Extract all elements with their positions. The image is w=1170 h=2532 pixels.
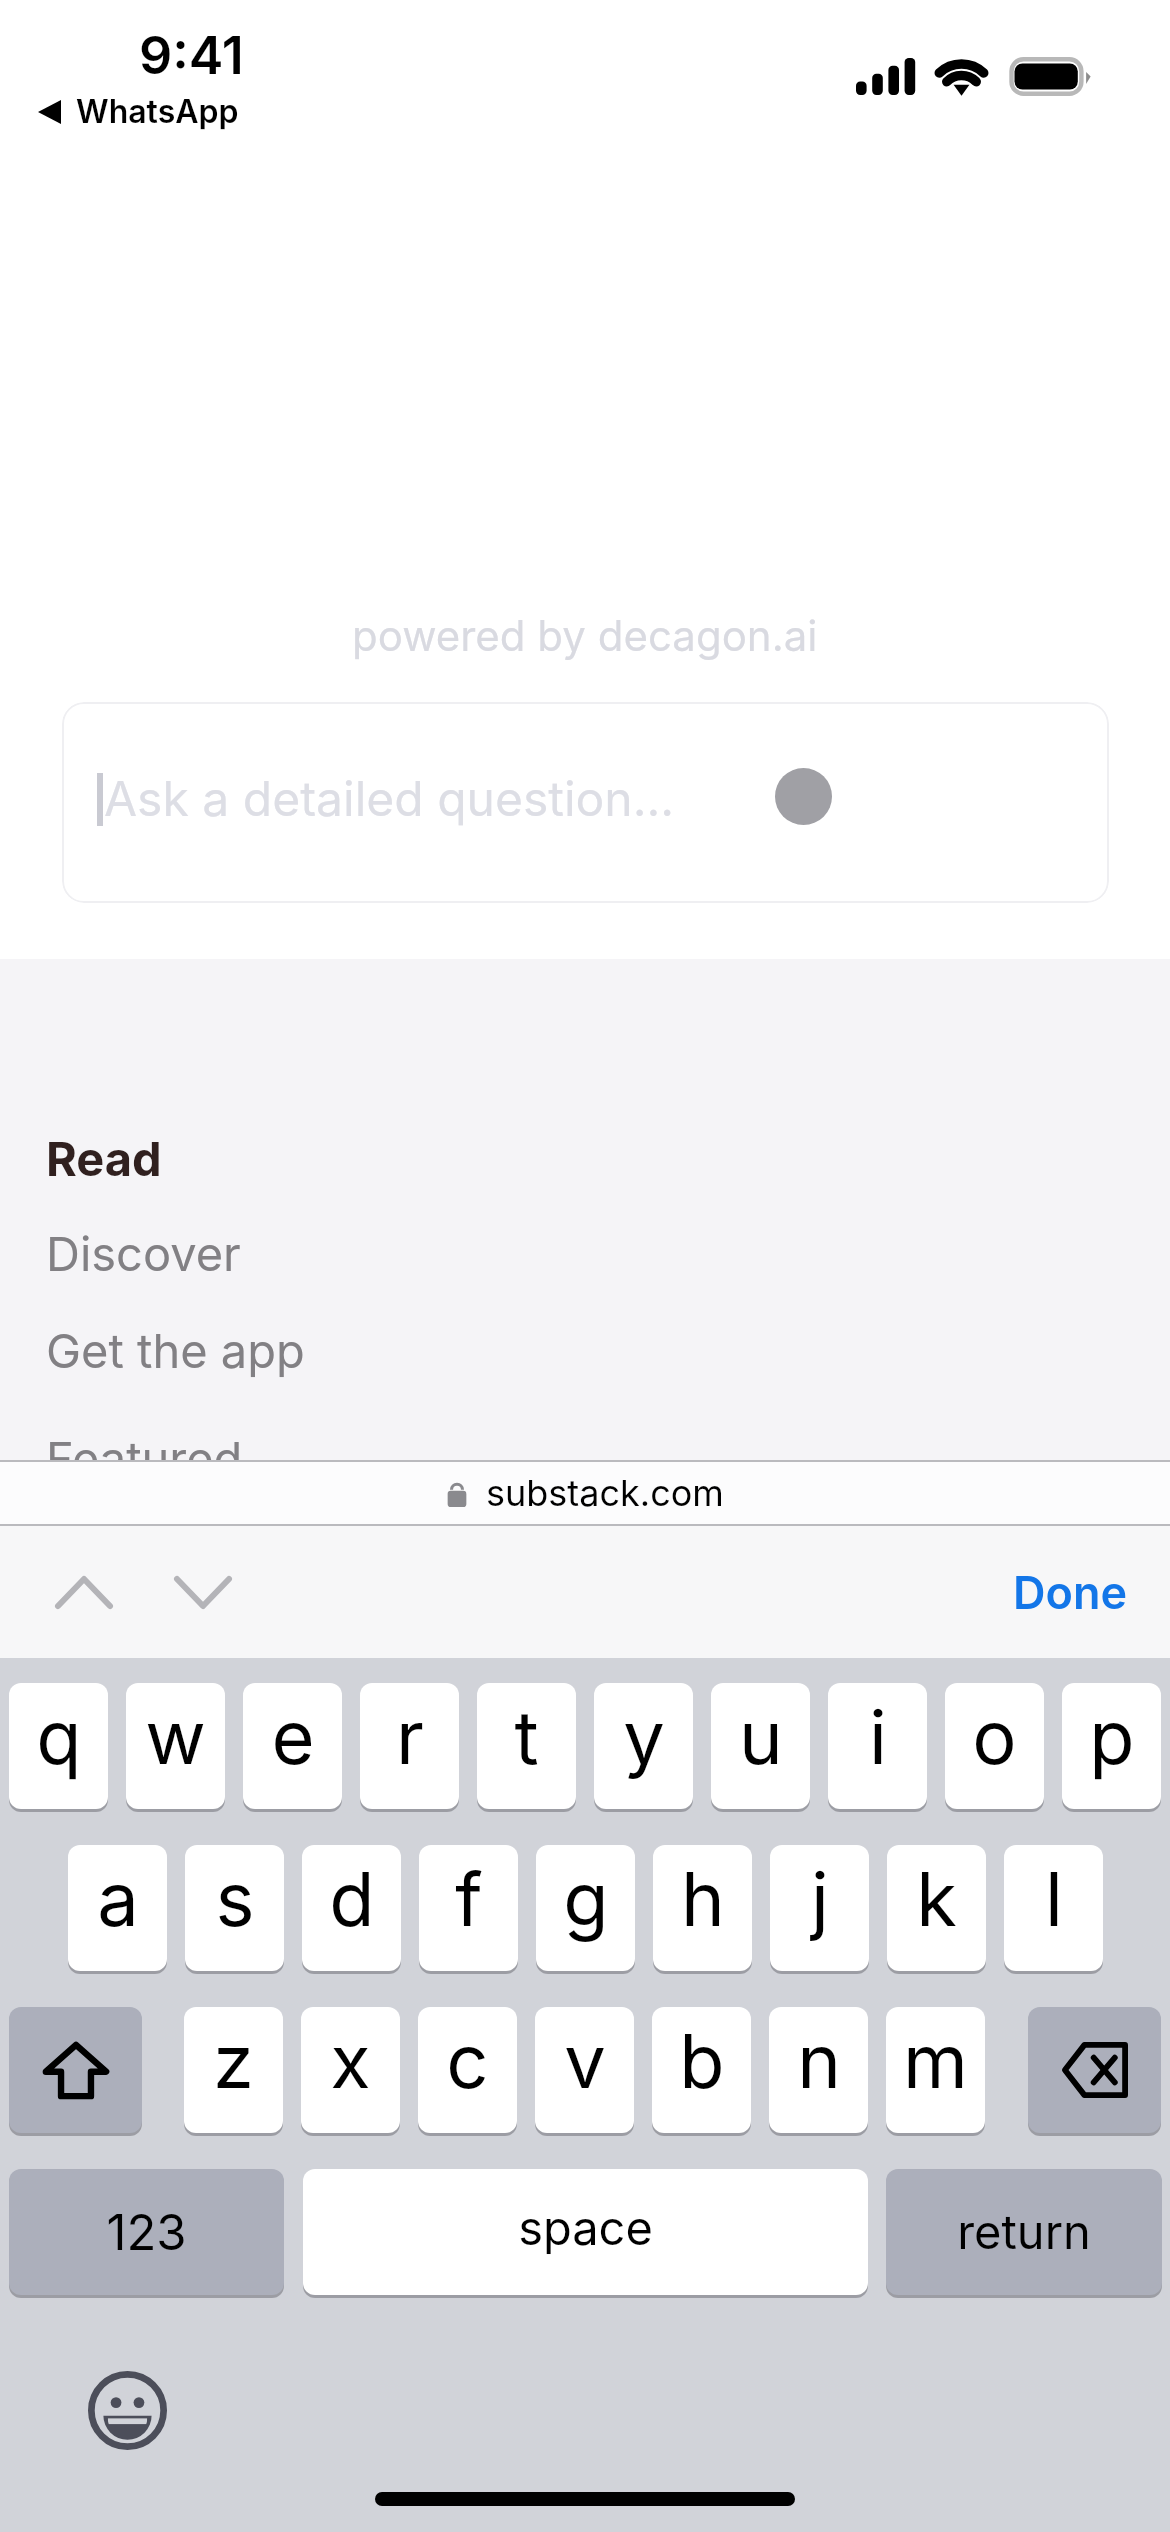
- button[interactable]: b: [652, 2007, 751, 2133]
- button[interactable]: Next field: [159, 1548, 247, 1636]
- button[interactable]: v: [535, 2007, 634, 2133]
- button[interactable]: l: [1004, 1845, 1103, 1971]
- button[interactable]: r: [360, 1683, 459, 1809]
- staticText: powered by decagon.ai: [352, 610, 818, 661]
- staticText: h: [681, 1854, 725, 1944]
- staticText: t: [514, 1692, 539, 1782]
- button[interactable]: x: [301, 2007, 400, 2133]
- staticText: k: [916, 1854, 957, 1944]
- button[interactable]: h: [653, 1845, 752, 1971]
- staticText: l: [1045, 1854, 1063, 1944]
- button[interactable]: Previous field: [40, 1548, 128, 1636]
- button[interactable]: o: [945, 1683, 1044, 1809]
- button[interactable]: i: [828, 1683, 927, 1809]
- button[interactable]: a: [68, 1845, 167, 1971]
- staticText: space: [518, 2199, 653, 2256]
- staticText: f: [455, 1854, 483, 1944]
- staticText: g: [563, 1854, 609, 1944]
- button[interactable]: s: [185, 1845, 284, 1971]
- button[interactable]: p: [1062, 1683, 1161, 1809]
- staticText: r: [396, 1692, 424, 1782]
- staticText: o: [972, 1692, 1017, 1782]
- staticText: m: [903, 2016, 968, 2106]
- staticText: e: [271, 1692, 315, 1782]
- staticText: Done: [1013, 1565, 1128, 1619]
- staticText: Read: [46, 1130, 162, 1187]
- staticText: y: [623, 1692, 665, 1782]
- button[interactable]: 123: [9, 2169, 284, 2295]
- button[interactable]: y: [594, 1683, 693, 1809]
- button[interactable]: f: [419, 1845, 518, 1971]
- button[interactable]: Backspace: [1028, 2007, 1161, 2133]
- button[interactable]: return: [886, 2169, 1162, 2295]
- button[interactable]: Get the app: [0, 1312, 1170, 1388]
- button[interactable]: Discover: [0, 1215, 1170, 1291]
- staticText: j: [811, 1854, 829, 1944]
- staticText: substack.com: [486, 1471, 724, 1515]
- button[interactable]: WhatsApp: [38, 92, 239, 131]
- button[interactable]: q: [9, 1683, 108, 1809]
- button[interactable]: e: [243, 1683, 342, 1809]
- button[interactable]: Read: [0, 1120, 1170, 1196]
- staticText: i: [869, 1692, 887, 1782]
- button[interactable]: w: [126, 1683, 225, 1809]
- staticText: Ask a detailed question...: [104, 769, 675, 827]
- staticText: 9:41: [139, 24, 244, 87]
- button[interactable]: t: [477, 1683, 576, 1809]
- staticText: p: [1089, 1692, 1135, 1782]
- staticText: a: [97, 1854, 139, 1944]
- staticText: 123: [106, 2203, 187, 2262]
- button[interactable]: Featured: [0, 1420, 1170, 1496]
- button[interactable]: n: [769, 2007, 868, 2133]
- staticText: b: [679, 2016, 725, 2106]
- staticText: Get the app: [46, 1322, 305, 1379]
- staticText: d: [329, 1854, 375, 1944]
- button[interactable]: g: [536, 1845, 635, 1971]
- staticText: q: [36, 1692, 82, 1782]
- staticText: Discover: [46, 1225, 241, 1282]
- button[interactable]: d: [302, 1845, 401, 1971]
- staticText: n: [797, 2016, 841, 2106]
- staticText: u: [739, 1692, 783, 1782]
- staticText: w: [145, 1692, 206, 1782]
- button[interactable]: k: [887, 1845, 986, 1971]
- button[interactable]: u: [711, 1683, 810, 1809]
- staticText: s: [215, 1854, 255, 1944]
- button[interactable]: Done: [1013, 1565, 1128, 1619]
- staticText: v: [564, 2016, 606, 2106]
- button[interactable]: c: [418, 2007, 517, 2133]
- button[interactable]: m: [886, 2007, 985, 2133]
- button[interactable]: j: [770, 1845, 869, 1971]
- button[interactable]: Ask a detailed question...: [62, 702, 1109, 903]
- button[interactable]: Shift: [9, 2007, 142, 2133]
- staticText: x: [330, 2016, 371, 2106]
- button[interactable]: substack.com: [0, 1462, 1170, 1524]
- staticText: z: [213, 2016, 254, 2106]
- staticText: c: [446, 2016, 489, 2106]
- button[interactable]: Emoji keyboard: [87, 2370, 167, 2450]
- button[interactable]: z: [184, 2007, 283, 2133]
- staticText: Featured: [46, 1430, 243, 1487]
- staticText: return: [957, 2203, 1091, 2260]
- staticText: WhatsApp: [76, 92, 239, 131]
- button[interactable]: Voice input: [775, 768, 832, 825]
- button[interactable]: space: [303, 2169, 868, 2295]
